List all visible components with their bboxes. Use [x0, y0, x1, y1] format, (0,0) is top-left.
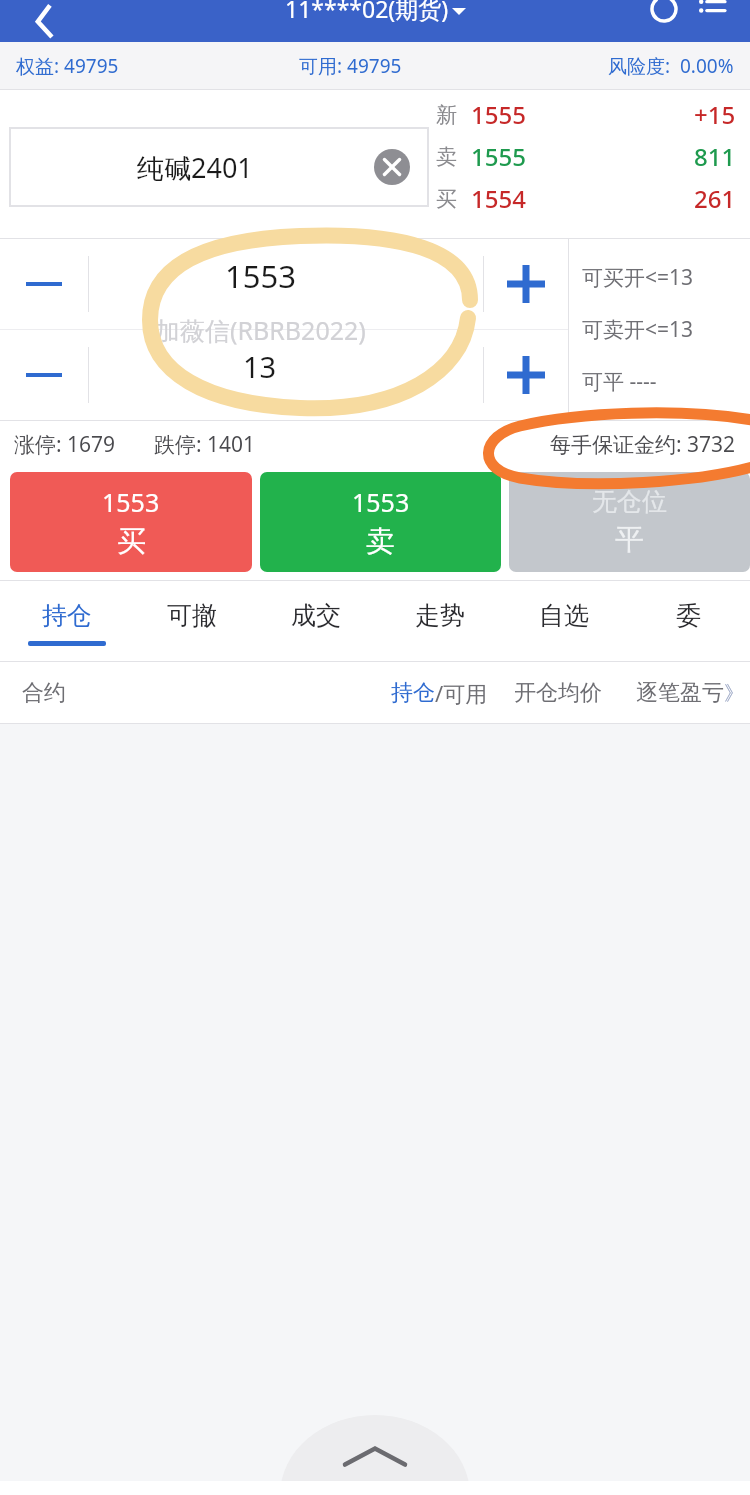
staticText: 委 [676, 600, 701, 631]
staticText: 纯碱2401 [137, 149, 253, 186]
staticText: 持仓 [391, 679, 435, 707]
staticText: 买 [117, 523, 146, 560]
button[interactable]: 走势 [378, 580, 502, 662]
staticText: +15 [694, 98, 736, 131]
staticText: 卖 [366, 523, 395, 560]
staticText: 跌停: 1401 [154, 430, 256, 459]
button[interactable]: 1553 [10, 472, 252, 572]
staticText: 买 [436, 186, 457, 212]
staticText: /可用 [435, 678, 488, 708]
staticText: 1555 [471, 140, 526, 173]
staticText: 无仓位 [592, 486, 667, 517]
button[interactable]: Increase [484, 329, 568, 420]
staticText: 卖 [436, 144, 457, 170]
staticText: 可用: 49795 [299, 53, 402, 79]
button[interactable]: Refresh [640, 0, 688, 42]
button[interactable]: 可撤 [129, 580, 254, 662]
button[interactable]: 纯碱2401 [10, 128, 428, 206]
staticText: 13 [243, 347, 277, 386]
button[interactable]: Back [0, 0, 90, 42]
button[interactable]: 自选 [502, 580, 626, 662]
staticText: 可卖开<=13 [582, 315, 694, 344]
button[interactable]: Clear [374, 149, 410, 185]
staticText: 风险度: 0.00% [608, 53, 734, 79]
button[interactable]: 11****02(期货) [285, 6, 466, 37]
staticText: 1553 [102, 485, 160, 519]
staticText: 涨停: 1679 [14, 430, 116, 459]
staticText: 11****02(期货) [285, 0, 449, 24]
staticText: 平 [615, 521, 644, 558]
button[interactable]: 成交 [254, 580, 378, 662]
staticText: 自选 [539, 600, 589, 631]
staticText: 》 [724, 681, 744, 706]
staticText: 1555 [471, 98, 526, 131]
staticText: 逐笔盈亏 [636, 679, 724, 707]
staticText: 可撤 [167, 600, 217, 631]
staticText: 可平 ---- [582, 367, 657, 396]
staticText: 261 [694, 182, 736, 215]
staticText: 权益: 49795 [16, 53, 119, 79]
staticText: 新 [436, 102, 457, 128]
staticText: 每手保证金约: 3732 [550, 430, 736, 459]
staticText: 1553 [225, 255, 296, 297]
button[interactable]: Expand [280, 1415, 470, 1495]
button[interactable]: 无仓位 [509, 472, 750, 572]
staticText: 走势 [415, 600, 465, 631]
button[interactable]: Menu [688, 0, 736, 42]
button[interactable]: Decrease [0, 329, 88, 420]
staticText: 合约 [22, 679, 66, 707]
button[interactable]: 委 [626, 580, 750, 662]
staticText: 持仓 [42, 600, 92, 631]
button[interactable]: Decrease [0, 239, 88, 329]
button[interactable]: 1553 [260, 472, 501, 572]
staticText: 开仓均价 [514, 679, 602, 707]
staticText: 1554 [471, 182, 526, 215]
button[interactable]: Increase [484, 239, 568, 329]
staticText: 加薇信(RBRB2022) [155, 313, 366, 347]
staticText: 1553 [352, 485, 410, 519]
button[interactable]: 持仓 [4, 580, 129, 662]
staticText: 可买开<=13 [582, 263, 694, 292]
staticText: 成交 [291, 600, 341, 631]
staticText: 811 [694, 140, 736, 173]
